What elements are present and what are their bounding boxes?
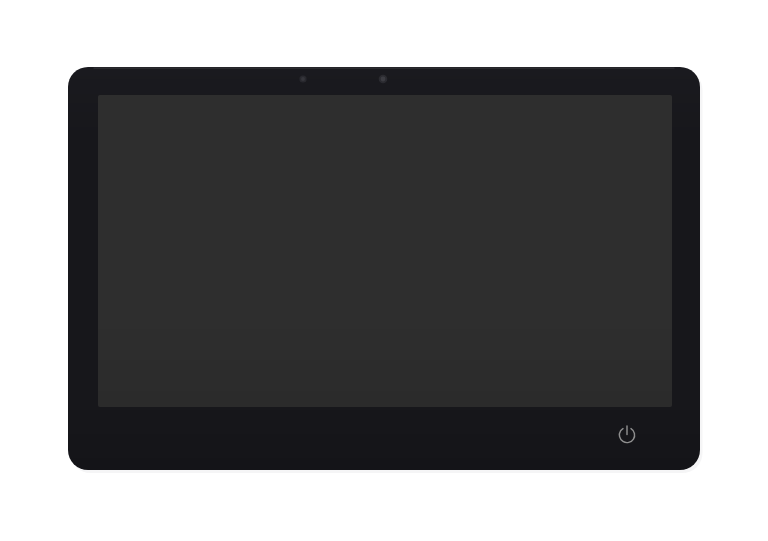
button[interactable]: Power	[68, 67, 700, 470]
button[interactable]: Power	[610, 418, 644, 452]
